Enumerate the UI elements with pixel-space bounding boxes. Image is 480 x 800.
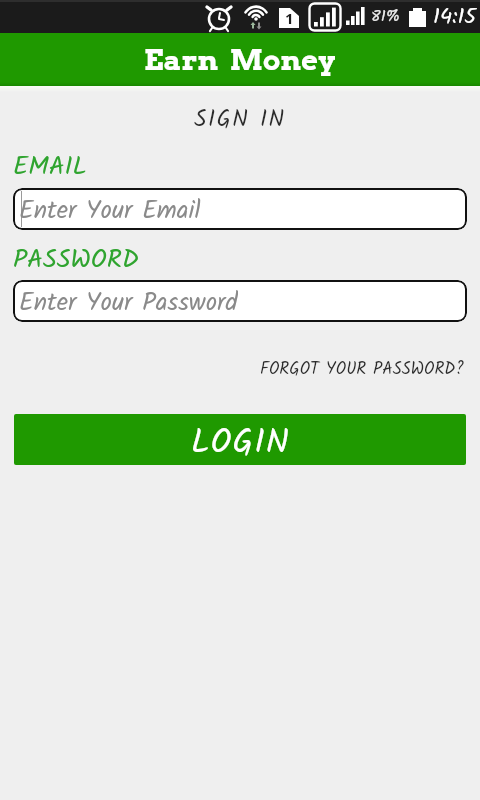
staticText: SIGN IN xyxy=(0,102,480,139)
staticText: Enter Your Password xyxy=(19,283,238,322)
button[interactable]: LOGIN xyxy=(14,414,466,465)
button[interactable]: Enter Your Email xyxy=(13,188,467,230)
staticText: LOGIN xyxy=(191,417,290,465)
staticText: Enter Your Email xyxy=(19,191,201,230)
staticText: 81% xyxy=(371,4,400,30)
button[interactable]: Enter Your Password xyxy=(13,280,467,322)
staticText: PASSWORD xyxy=(13,239,139,280)
staticText: EMAIL xyxy=(13,146,87,187)
button[interactable]: FORGOT YOUR PASSWORD? xyxy=(260,356,480,383)
staticText: 14:15 xyxy=(433,0,477,33)
staticText: 1 xyxy=(285,8,294,28)
staticText: Earn Money xyxy=(144,42,336,77)
